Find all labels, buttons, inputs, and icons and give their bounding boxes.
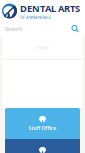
staticText: DENTAL ARTS	[20, 2, 80, 14]
staticText: more	[36, 44, 49, 51]
staticText: OF ANNANDALE	[20, 14, 51, 20]
button[interactable]: Staff Office	[5, 108, 80, 139]
button[interactable]: Search	[0, 22, 85, 36]
staticText: Search	[5, 25, 22, 33]
staticText: Staff Office	[28, 124, 56, 132]
button[interactable]: Patients	[5, 139, 80, 153]
